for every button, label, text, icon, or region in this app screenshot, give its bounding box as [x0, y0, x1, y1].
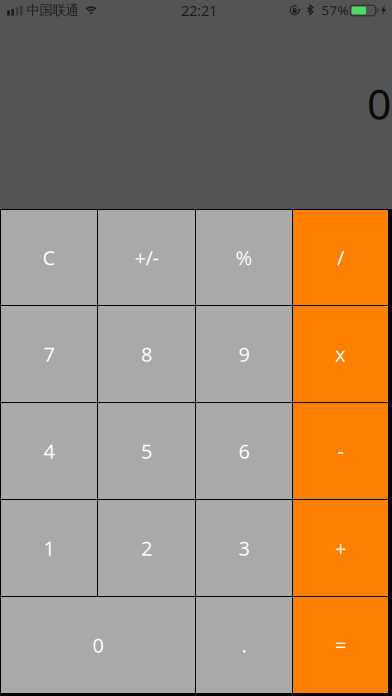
button[interactable]: %	[196, 210, 292, 305]
staticText: 7	[43, 341, 54, 367]
staticText: 4	[43, 438, 54, 464]
staticText: +/-	[134, 244, 158, 271]
button[interactable]: 4	[1, 403, 97, 499]
staticText: -	[337, 438, 343, 464]
staticText: .	[241, 632, 246, 658]
button[interactable]: =	[293, 597, 388, 693]
staticText: 6	[238, 438, 249, 464]
staticText: 中国联通	[26, 2, 78, 18]
staticText: +	[335, 535, 346, 561]
staticText: C	[42, 244, 55, 271]
staticText: x	[335, 341, 346, 367]
button[interactable]: 0	[1, 597, 195, 693]
staticText: /	[337, 244, 344, 271]
staticText: 8	[141, 341, 152, 367]
button[interactable]: +/-	[98, 210, 195, 305]
staticText: %	[235, 244, 252, 271]
staticText: 57%	[322, 1, 349, 19]
staticText: 2	[141, 535, 152, 561]
staticText: 1	[43, 535, 54, 561]
button[interactable]: 2	[98, 500, 195, 596]
button[interactable]: +	[293, 500, 388, 596]
staticText: =	[335, 632, 346, 658]
button[interactable]: 6	[196, 403, 292, 499]
button[interactable]: 1	[1, 500, 97, 596]
staticText: 0	[367, 75, 391, 131]
button[interactable]: 9	[196, 306, 292, 402]
button[interactable]: /	[293, 210, 388, 305]
button[interactable]: 8	[98, 306, 195, 402]
staticText: 5	[141, 438, 152, 464]
staticText: 9	[238, 341, 249, 367]
button[interactable]: x	[293, 306, 388, 402]
staticText: 22:21	[181, 1, 217, 20]
button[interactable]: 5	[98, 403, 195, 499]
staticText: 0	[92, 632, 103, 658]
button[interactable]: 7	[1, 306, 97, 402]
button[interactable]: C	[1, 210, 97, 305]
button[interactable]: -	[293, 403, 388, 499]
staticText: 3	[238, 535, 249, 561]
button[interactable]: 3	[196, 500, 292, 596]
